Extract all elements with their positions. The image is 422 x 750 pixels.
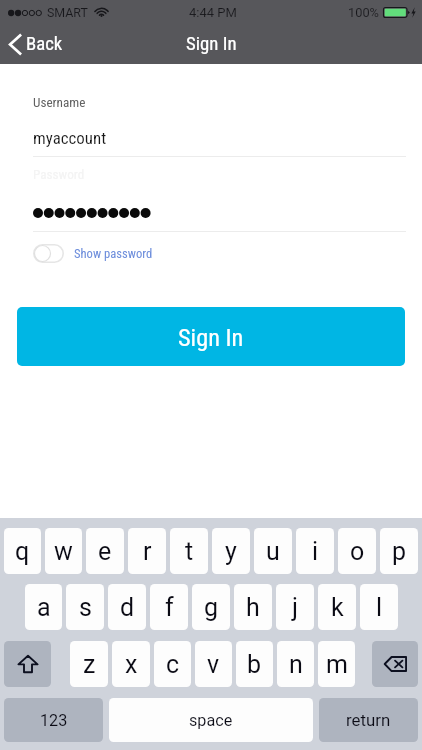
- staticText: a: [37, 593, 51, 622]
- button[interactable]: space: [109, 698, 313, 742]
- button[interactable]: Sign In: [17, 307, 405, 366]
- button[interactable]: l: [360, 584, 398, 630]
- staticText: SMART: [47, 5, 88, 20]
- button[interactable]: g: [192, 584, 230, 630]
- staticText: f: [165, 593, 174, 622]
- staticText: Show password: [74, 246, 153, 261]
- staticText: i: [312, 537, 319, 566]
- staticText: space: [189, 711, 233, 730]
- staticText: myaccount: [33, 128, 107, 148]
- staticText: n: [289, 650, 303, 679]
- button[interactable]: Shift: [4, 641, 51, 687]
- staticText: v: [207, 650, 220, 679]
- button[interactable]: y: [212, 528, 250, 574]
- button[interactable]: c: [154, 641, 191, 687]
- staticText: 4:44 PM: [189, 5, 237, 20]
- button[interactable]: a: [25, 584, 62, 630]
- button[interactable]: w: [45, 528, 82, 574]
- staticText: h: [246, 593, 260, 622]
- staticText: w: [54, 537, 73, 566]
- staticText: d: [120, 593, 135, 622]
- button[interactable]: e: [86, 528, 124, 574]
- button[interactable]: x: [112, 641, 150, 687]
- button[interactable]: r: [128, 528, 166, 574]
- staticText: e: [98, 537, 112, 566]
- staticText: l: [376, 593, 383, 622]
- button[interactable]: 123: [4, 698, 103, 742]
- button[interactable]: s: [66, 584, 104, 630]
- button[interactable]: z: [70, 641, 108, 687]
- staticText: Username: [33, 95, 86, 110]
- staticText: k: [331, 593, 344, 622]
- button[interactable]: j: [276, 584, 314, 630]
- staticText: Sign In: [186, 33, 237, 55]
- button[interactable]: return: [319, 698, 418, 742]
- staticText: m: [326, 650, 348, 679]
- staticText: x: [125, 650, 138, 679]
- staticText: g: [204, 593, 219, 622]
- staticText: s: [79, 593, 92, 622]
- staticText: Sign In: [178, 323, 244, 351]
- staticText: r: [143, 537, 152, 566]
- button[interactable]: b: [236, 641, 273, 687]
- staticText: y: [225, 537, 237, 566]
- button[interactable]: q: [4, 528, 41, 574]
- button[interactable]: Back: [0, 27, 71, 61]
- button[interactable]: v: [195, 641, 232, 687]
- staticText: b: [247, 650, 262, 679]
- button[interactable]: m: [318, 641, 355, 687]
- button[interactable]: Show password: [0, 239, 161, 268]
- staticText: 123: [40, 711, 68, 730]
- button[interactable]: k: [318, 584, 356, 630]
- staticText: z: [83, 650, 96, 679]
- staticText: o: [350, 537, 365, 566]
- button[interactable]: u: [254, 528, 292, 574]
- button[interactable]: d: [108, 584, 146, 630]
- staticText: u: [266, 537, 280, 566]
- staticText: p: [392, 537, 407, 566]
- staticText: c: [166, 650, 180, 679]
- button[interactable]: p: [380, 528, 418, 574]
- button[interactable]: h: [234, 584, 272, 630]
- button[interactable]: f: [150, 584, 188, 630]
- button[interactable]: i: [296, 528, 334, 574]
- staticText: t: [185, 537, 194, 566]
- button[interactable]: o: [338, 528, 376, 574]
- button[interactable]: Backspace: [372, 641, 418, 687]
- staticText: return: [346, 710, 391, 730]
- button[interactable]: t: [170, 528, 208, 574]
- staticText: q: [15, 537, 30, 566]
- staticText: Back: [26, 33, 63, 55]
- staticText: Password: [33, 167, 85, 182]
- button[interactable]: n: [277, 641, 314, 687]
- staticText: 100%: [348, 5, 379, 20]
- staticText: j: [292, 593, 298, 622]
